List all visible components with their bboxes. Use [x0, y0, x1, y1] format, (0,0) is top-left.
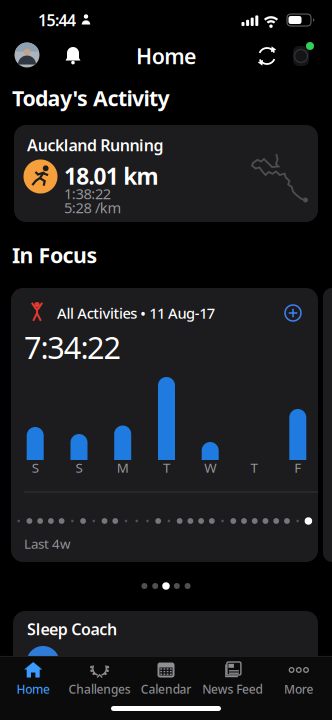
button[interactable]: Sleep Coach — [13, 611, 318, 671]
staticText: Sleep Coach — [27, 618, 117, 640]
staticText: Auckland Running — [27, 134, 163, 156]
button[interactable]: Calendar — [133, 656, 199, 702]
staticText: Challenges — [68, 681, 131, 697]
staticText: S — [32, 459, 39, 476]
button[interactable]: More — [266, 656, 332, 702]
button[interactable]: Home — [0, 656, 66, 702]
staticText: Today's Activity — [12, 84, 169, 112]
staticText: S — [75, 459, 82, 476]
staticText: 7:34:22 — [24, 327, 122, 367]
button[interactable]: Add activity — [281, 301, 305, 325]
staticText: 18.01 km — [64, 161, 158, 191]
staticText: 1:38:22 — [64, 184, 111, 203]
staticText: All Activities • 11 Aug-17 — [57, 303, 215, 323]
staticText: Home — [136, 42, 196, 70]
staticText: Calendar — [141, 681, 191, 697]
staticText: In Focus — [12, 241, 97, 269]
button[interactable]: Watch — [288, 41, 318, 71]
staticText: W — [204, 459, 216, 476]
button[interactable]: Challenges — [67, 656, 133, 702]
staticText: Home — [16, 681, 50, 697]
staticText: Last 4w — [24, 535, 70, 552]
staticText: More — [284, 681, 313, 697]
staticText: F — [294, 459, 301, 476]
button[interactable]: Sync — [249, 38, 285, 74]
staticText: T — [250, 459, 257, 476]
staticText: 5:28 /km — [64, 198, 122, 217]
button[interactable]: Notifications — [55, 38, 91, 74]
staticText: 15:44 — [38, 9, 76, 31]
staticText: News Feed — [202, 681, 263, 697]
button[interactable]: News Feed — [199, 656, 265, 702]
button[interactable]: All Activities summary — [11, 288, 318, 562]
staticText: T — [163, 459, 170, 476]
button[interactable]: Auckland Running activity — [14, 125, 318, 222]
staticText: M — [117, 459, 129, 476]
button[interactable]: Profile — [14, 42, 39, 67]
